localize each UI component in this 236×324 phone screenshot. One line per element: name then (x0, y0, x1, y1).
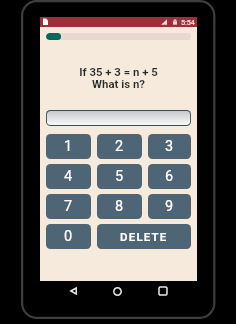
button[interactable]: 9 (148, 194, 191, 219)
button[interactable]: 4 (46, 164, 91, 189)
staticText: 6 (165, 168, 174, 185)
button[interactable] (46, 110, 191, 126)
staticText: 8 (115, 198, 124, 215)
button[interactable]: 0 (46, 224, 91, 249)
button[interactable]: Home (109, 283, 125, 299)
button[interactable]: 2 (97, 134, 142, 159)
staticText: 9 (165, 198, 174, 215)
button[interactable]: 5 (97, 164, 142, 189)
button[interactable]: 6 (148, 164, 191, 189)
button[interactable]: 1 (46, 134, 91, 159)
staticText: 1 (64, 138, 73, 155)
staticText: DELETE (120, 230, 168, 243)
staticText: 5:54 (181, 18, 195, 26)
button[interactable]: Recents (155, 283, 171, 299)
staticText: 0 (64, 228, 73, 245)
staticText: What is n? (40, 77, 197, 90)
button[interactable]: Back (65, 283, 81, 299)
button[interactable]: 8 (97, 194, 142, 219)
staticText: 7 (64, 198, 73, 215)
button[interactable]: DELETE (97, 224, 191, 249)
button[interactable]: 7 (46, 194, 91, 219)
staticText: 2 (115, 138, 124, 155)
staticText: If 35 + 3 = n + 5 (40, 65, 197, 78)
staticText: 3 (165, 138, 174, 155)
staticText: 4 (64, 168, 73, 185)
button[interactable]: 3 (148, 134, 191, 159)
staticText: 5 (115, 168, 124, 185)
